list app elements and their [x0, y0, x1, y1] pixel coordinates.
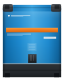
- button[interactable]: Victron MultiPlus inverter charger produ…: [0, 0, 64, 80]
